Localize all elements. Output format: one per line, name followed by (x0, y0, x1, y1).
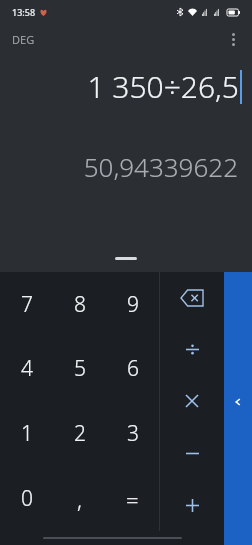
staticText: 7 (21, 290, 33, 319)
staticText: 1 (21, 419, 33, 448)
button[interactable]: 4 (0, 336, 53, 401)
button[interactable]: More options (220, 26, 246, 52)
button[interactable]: 1 (0, 401, 53, 466)
button[interactable]: 0 (0, 466, 53, 531)
button[interactable]: 9 (106, 272, 159, 336)
button[interactable]: Divide (160, 323, 224, 375)
staticText: = (126, 484, 139, 514)
staticText: 3 (127, 419, 139, 448)
staticText: 0 (21, 484, 33, 513)
button[interactable]: Open scientific panel (224, 272, 252, 531)
staticText: 50,94339622 (83, 149, 238, 184)
staticText: 9 (127, 290, 139, 319)
staticText: 5 (74, 354, 86, 383)
button[interactable]: = (106, 466, 159, 531)
staticText: , (77, 484, 82, 514)
button[interactable]: Backspace (160, 272, 224, 323)
staticText: 4 (21, 354, 33, 383)
staticText: 1 350÷26,5 (87, 66, 239, 107)
button[interactable]: DEG (12, 32, 35, 47)
button[interactable]: 2 (53, 401, 106, 466)
button[interactable]: 7 (0, 272, 53, 336)
button[interactable]: 8 (53, 272, 106, 336)
button[interactable]: 5 (53, 336, 106, 401)
button[interactable]: 6 (106, 336, 159, 401)
staticText: 2 (74, 419, 86, 448)
button[interactable]: Subtract (160, 427, 224, 479)
button[interactable]: 3 (106, 401, 159, 466)
staticText: 8 (74, 290, 86, 319)
staticText: 13:58 (12, 6, 36, 18)
button[interactable]: Multiply (160, 375, 224, 427)
button[interactable]: Add (160, 479, 224, 531)
button[interactable]: , (53, 466, 106, 531)
staticText: DEG (12, 32, 35, 47)
button[interactable] (115, 257, 137, 260)
staticText: 6 (127, 354, 139, 383)
